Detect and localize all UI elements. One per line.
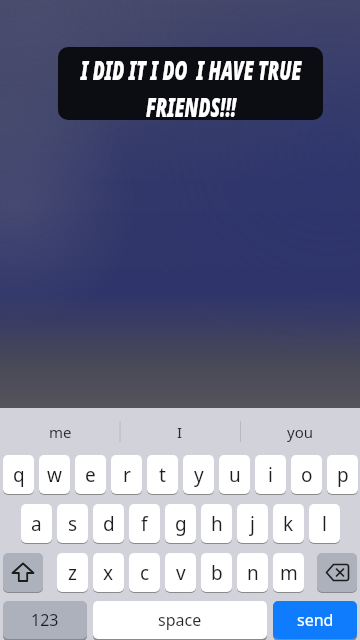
staticText: o [301,462,313,488]
staticText: k [283,511,294,537]
staticText: x [103,560,114,586]
button[interactable]: y [183,455,214,494]
button[interactable]: f [129,504,160,543]
button[interactable]: j [237,504,268,543]
button[interactable]: x [93,553,124,592]
button[interactable]: p [327,455,358,494]
staticText: i [268,462,273,488]
button[interactable]: g [165,504,196,543]
staticText: v [176,560,186,586]
button[interactable]: a [21,504,52,543]
staticText: n [247,560,259,586]
staticText: e [85,462,96,488]
button[interactable]: w [39,455,70,494]
button[interactable]: I [120,408,240,455]
button[interactable]: h [201,504,232,543]
staticText: a [31,511,42,537]
button[interactable]: q [3,455,34,494]
button[interactable]: d [93,504,124,543]
button[interactable]: z [57,553,88,592]
button[interactable]: e [75,455,106,494]
button[interactable]: send [273,601,357,639]
staticText: I DID IT I DO I HAVE TRUE [58,51,323,88]
button[interactable]: me [0,408,120,455]
button[interactable]: m [273,553,304,592]
staticText: you [287,422,313,442]
button[interactable]: c [129,553,160,592]
staticText: z [68,560,77,586]
staticText: t [159,462,166,488]
button[interactable]: r [111,455,142,494]
staticText: w [47,462,62,488]
staticText: u [229,462,241,488]
button[interactable]: you [240,408,360,455]
staticText: g [175,511,187,537]
button[interactable]: n [237,553,268,592]
button[interactable]: space [93,601,267,639]
staticText: j [250,511,255,537]
button[interactable]: b [201,553,232,592]
staticText: l [322,511,327,537]
button[interactable]: v [165,553,196,592]
staticText: 123 [31,609,59,631]
button[interactable] [3,553,43,592]
staticText: FRIENDS!!! [58,88,323,120]
button[interactable]: I DID IT I DO I HAVE TRUE [58,47,323,120]
staticText: q [13,462,25,488]
staticText: space [158,609,202,631]
staticText: d [103,511,115,537]
button[interactable] [317,553,357,592]
staticText: b [211,560,223,586]
button[interactable]: i [255,455,286,494]
button[interactable]: u [219,455,250,494]
button[interactable]: 123 [3,601,87,639]
staticText: me [49,422,72,442]
staticText: I [177,422,183,442]
staticText: p [337,462,349,488]
button[interactable]: l [309,504,340,543]
button[interactable]: s [57,504,88,543]
staticText: m [280,560,298,586]
staticText: h [211,511,223,537]
staticText: send [297,609,334,631]
button[interactable]: o [291,455,322,494]
staticText: f [141,511,148,537]
staticText: c [140,560,150,586]
staticText: y [194,462,204,488]
staticText: s [68,511,78,537]
button[interactable]: k [273,504,304,543]
button[interactable]: t [147,455,178,494]
staticText: r [123,462,131,488]
